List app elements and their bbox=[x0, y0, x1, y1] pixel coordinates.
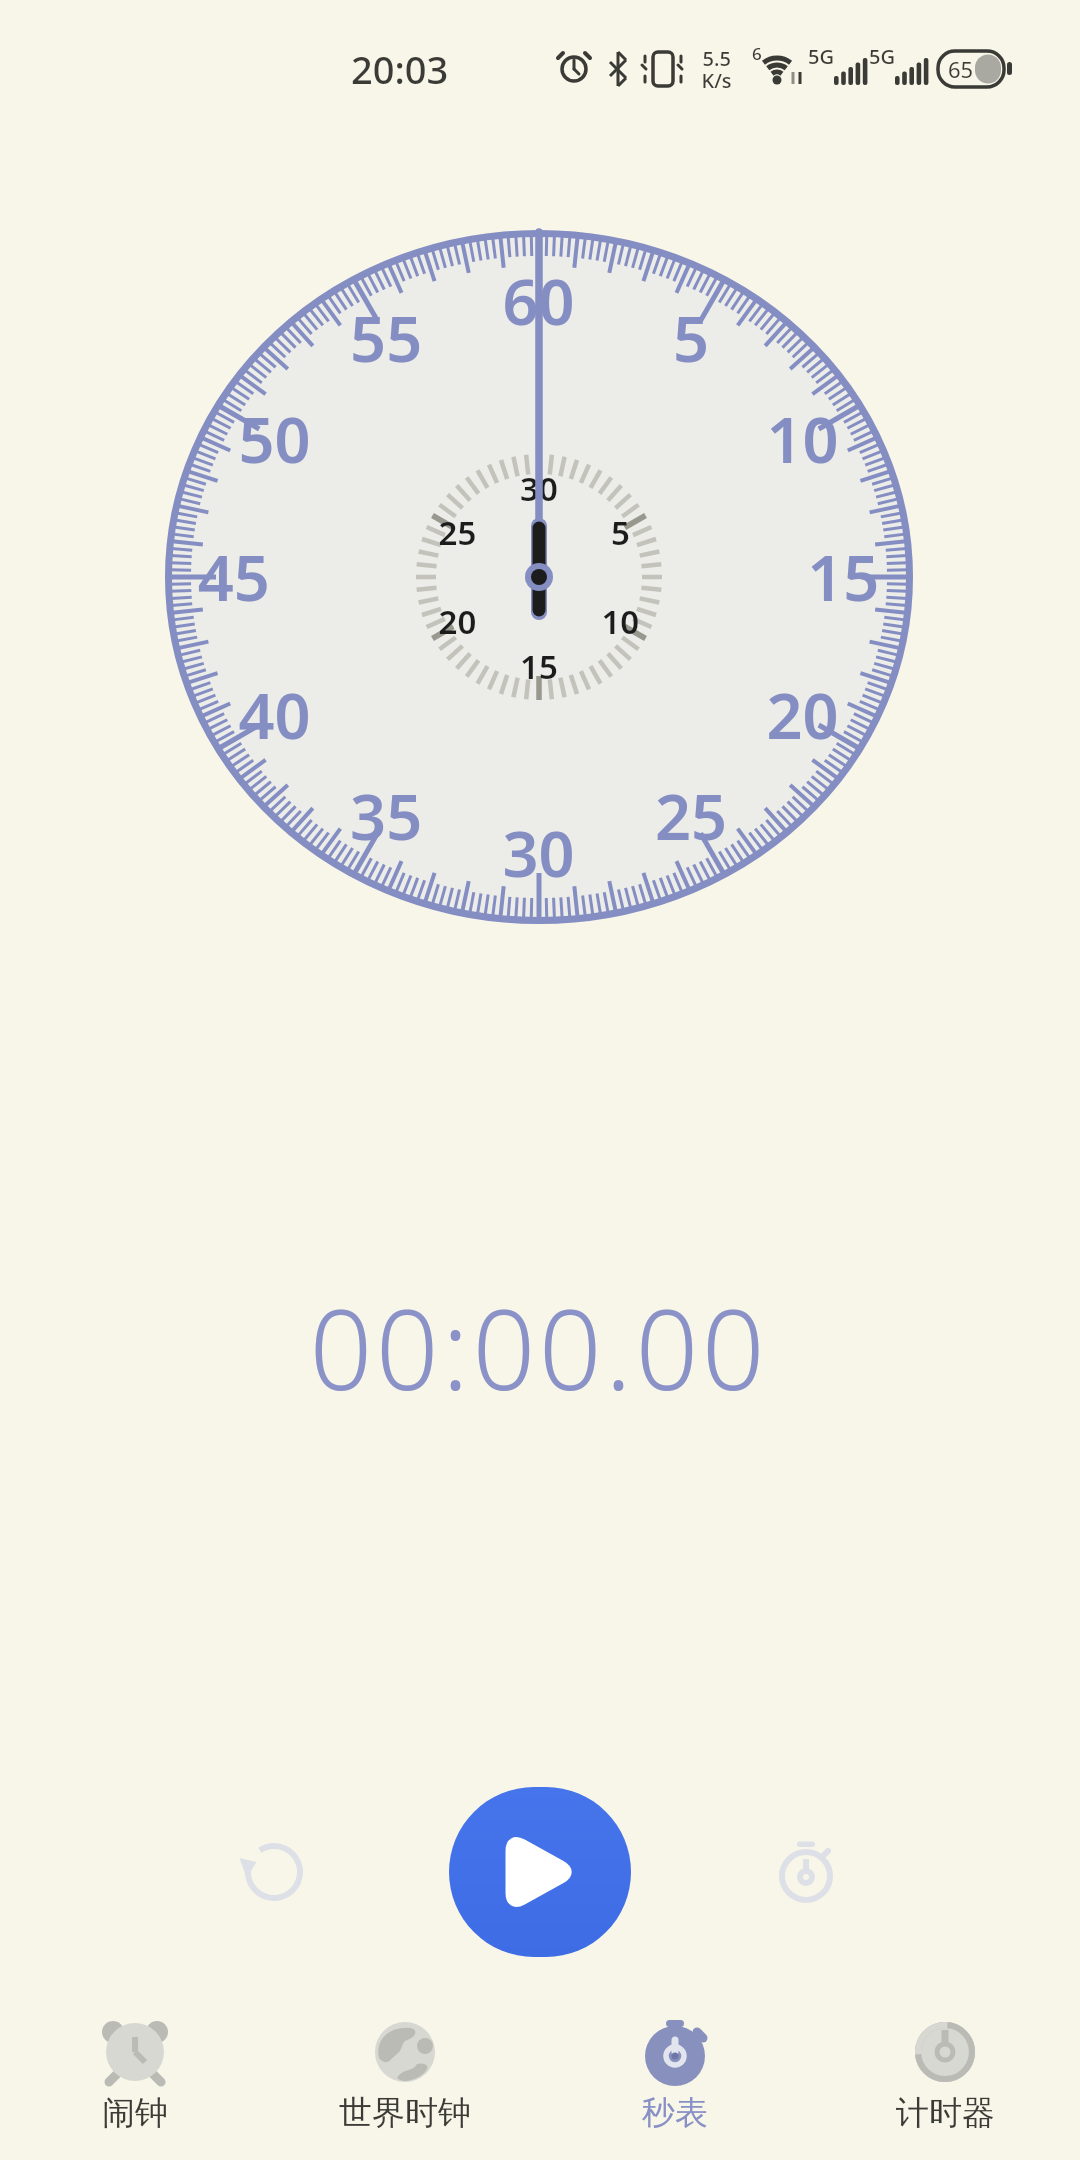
button[interactable]: 闹钟 bbox=[0, 1995, 270, 2160]
staticText: 计时器 bbox=[896, 2092, 995, 2134]
button[interactable] bbox=[449, 1787, 631, 1957]
staticText: 秒表 bbox=[642, 2092, 708, 2134]
staticText: 世界时钟 bbox=[339, 2092, 471, 2134]
button[interactable] bbox=[746, 1814, 866, 1934]
staticText: 闹钟 bbox=[102, 2092, 168, 2134]
button[interactable] bbox=[214, 1812, 334, 1932]
button[interactable]: 秒表 bbox=[540, 1995, 810, 2160]
button[interactable]: 计时器 bbox=[810, 1995, 1080, 2160]
button[interactable]: 世界时钟 bbox=[270, 1995, 540, 2160]
